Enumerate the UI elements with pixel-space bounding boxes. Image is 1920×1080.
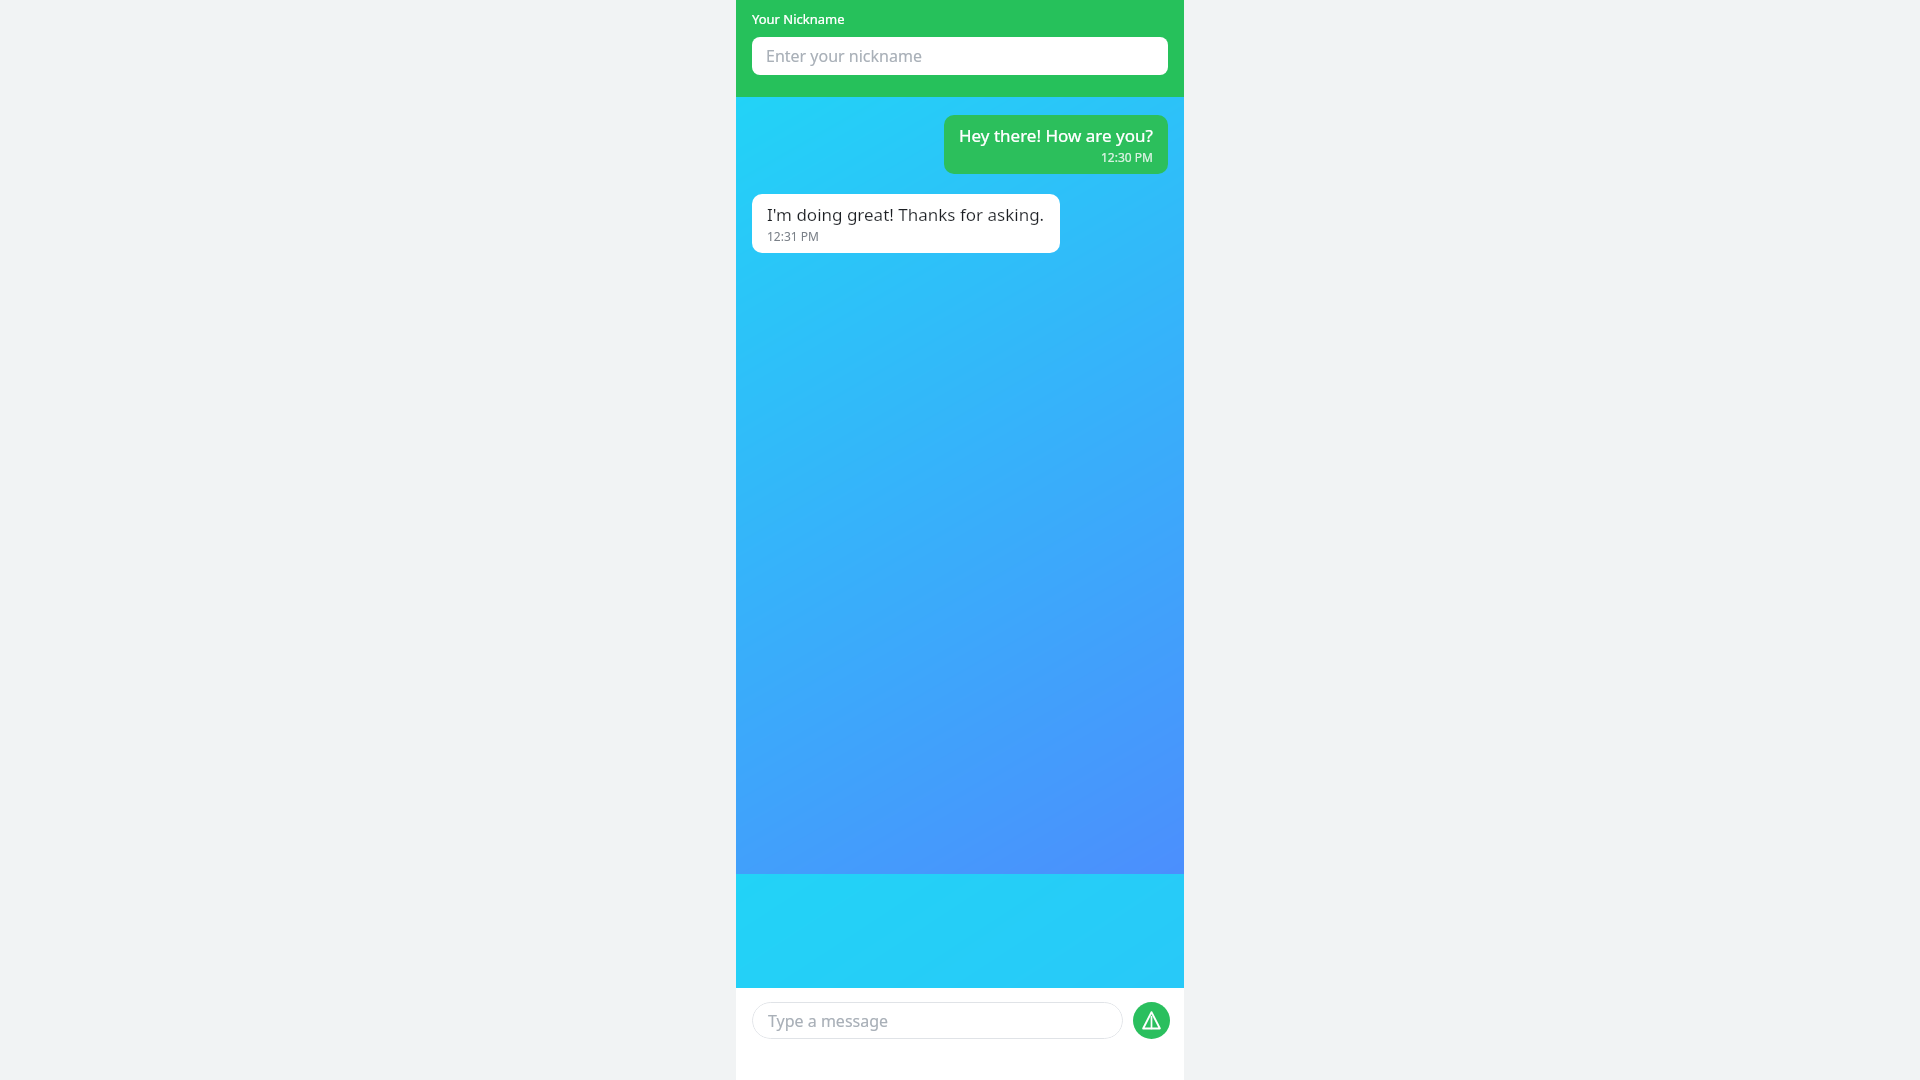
staticText: 12:31 PM xyxy=(767,228,819,244)
button[interactable]: I'm doing great! Thanks for asking. xyxy=(752,194,1060,253)
button[interactable]: Enter your nickname xyxy=(752,37,1168,75)
staticText: Your Nickname xyxy=(752,10,845,28)
staticText: 12:30 PM xyxy=(1101,149,1153,165)
button[interactable]: Type a message xyxy=(752,1002,1123,1039)
staticText: Type a message xyxy=(768,1010,889,1032)
button[interactable]: Send message xyxy=(1133,1002,1170,1039)
staticText: Enter your nickname xyxy=(766,45,922,67)
staticText: Hey there! How are you? xyxy=(959,124,1153,147)
staticText: I'm doing great! Thanks for asking. xyxy=(767,203,1045,226)
button[interactable]: Hey there! How are you? xyxy=(944,115,1168,174)
